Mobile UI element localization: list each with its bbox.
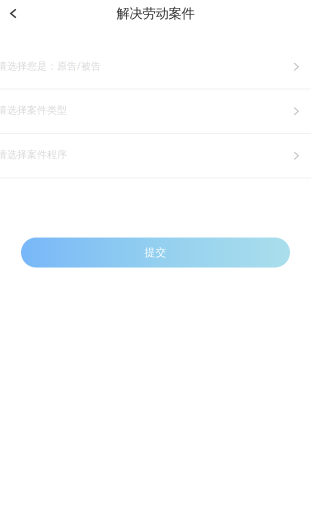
- button[interactable]: Back: [0, 0, 40, 27]
- button[interactable]: 提交: [21, 237, 290, 267]
- button[interactable]: 请选择案件程序: [0, 134, 311, 178]
- staticText: 提交: [144, 246, 166, 259]
- staticText: 请选择案件程序: [0, 148, 67, 161]
- button[interactable]: 请选择案件类型: [0, 89, 311, 134]
- staticText: 解决劳动案件: [116, 5, 194, 22]
- staticText: 请选择您是：原告/被告: [0, 59, 101, 72]
- staticText: 请选择案件类型: [0, 104, 67, 117]
- button[interactable]: 请选择您是：原告/被告: [0, 45, 311, 89]
